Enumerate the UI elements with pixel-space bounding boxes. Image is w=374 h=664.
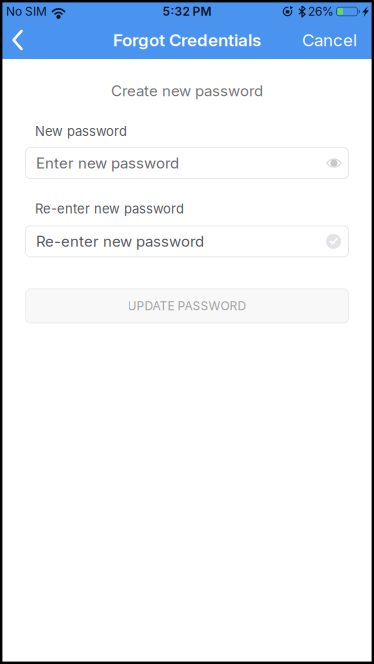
staticText: 26% <box>308 4 334 19</box>
staticText: Enter new password <box>36 154 179 172</box>
button[interactable]: UPDATE PASSWORD <box>25 288 349 323</box>
staticText: Forgot Credentials <box>113 30 261 50</box>
staticText: New password <box>35 124 127 139</box>
button[interactable]: Show password <box>326 155 349 171</box>
staticText: UPDATE PASSWORD <box>127 299 246 313</box>
staticText: 5:32 PM <box>162 4 211 19</box>
staticText: Cancel <box>302 30 357 50</box>
staticText: Create new password <box>111 82 263 100</box>
button[interactable]: Back <box>0 21 35 59</box>
staticText: Re-enter new password <box>36 232 204 250</box>
button[interactable]: Cancel <box>302 21 374 59</box>
staticText: No SIM <box>6 4 47 19</box>
staticText: Re-enter new password <box>35 201 184 216</box>
